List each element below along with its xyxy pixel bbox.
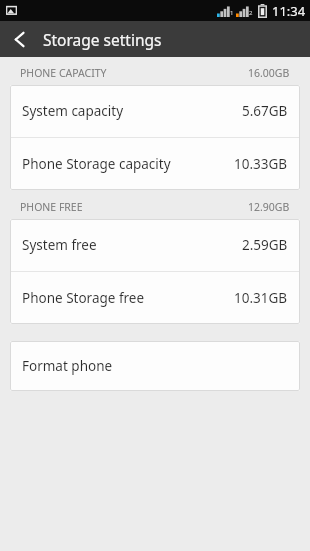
staticText: 2 xyxy=(249,9,253,17)
staticText: System capacity xyxy=(22,102,124,120)
staticText: 12.90GB xyxy=(248,200,290,214)
staticText: 5.67GB xyxy=(242,102,288,120)
staticText: PHONE FREE xyxy=(20,200,83,214)
button[interactable]: Phone Storage free xyxy=(10,272,300,324)
staticText: PHONE CAPACITY xyxy=(20,66,107,80)
staticText: 10.33GB xyxy=(234,155,288,173)
staticText: 11:34 xyxy=(272,2,306,20)
staticText: 1 xyxy=(230,9,234,17)
button[interactable]: System free xyxy=(10,219,300,271)
staticText: 10.31GB xyxy=(234,289,288,307)
staticText: Format phone xyxy=(22,357,113,375)
staticText: System free xyxy=(22,236,97,254)
staticText: 2.59GB xyxy=(242,236,288,254)
button[interactable]: Back xyxy=(0,21,38,57)
button[interactable]: Phone Storage capacity xyxy=(10,138,300,190)
button[interactable]: Format phone xyxy=(10,341,300,391)
staticText: Phone Storage capacity xyxy=(22,155,171,173)
staticText: Storage settings xyxy=(43,29,162,50)
staticText: 16.00GB xyxy=(248,66,290,80)
button[interactable]: System capacity xyxy=(10,85,300,137)
staticText: Phone Storage free xyxy=(22,289,145,307)
